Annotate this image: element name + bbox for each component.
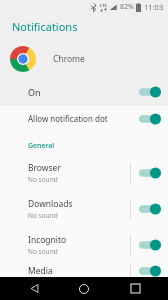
staticText: 11:03	[144, 2, 164, 12]
staticText: Media	[28, 265, 53, 277]
button[interactable]: Chrome	[0, 42, 168, 76]
button[interactable]: Toggle Incognito	[131, 229, 168, 261]
button[interactable]: Toggle notifications	[131, 80, 168, 104]
staticText: Notifications	[12, 19, 78, 34]
button[interactable]: Toggle notification dot	[131, 106, 168, 131]
staticText: LTE	[100, 3, 107, 8]
button[interactable]: Allow notification dot	[0, 106, 168, 131]
staticText: General	[28, 141, 55, 151]
button[interactable]: Media	[0, 265, 168, 277]
button[interactable]: Browser	[0, 157, 168, 189]
button[interactable]: Downloads	[0, 193, 168, 225]
staticText: Downloads	[28, 198, 73, 210]
button[interactable]: Incognito	[0, 229, 168, 261]
button[interactable]: Back	[17, 277, 51, 300]
staticText: Incognito	[28, 234, 67, 246]
staticText: No sound	[28, 211, 58, 220]
button[interactable]: Toggle Downloads	[131, 193, 168, 225]
button[interactable]: Home	[67, 277, 101, 300]
staticText: Allow notification dot	[28, 113, 131, 124]
staticText: Chrome	[53, 53, 85, 65]
button[interactable]: Toggle Browser	[131, 157, 168, 189]
staticText: Browser	[28, 162, 61, 174]
staticText: On	[28, 86, 131, 98]
staticText: No sound	[28, 247, 58, 256]
staticText: No sound	[28, 175, 58, 184]
button[interactable]: Toggle Media	[131, 265, 168, 277]
button[interactable]: Recent apps	[118, 277, 152, 300]
staticText: 82%	[120, 2, 134, 12]
button[interactable]: On	[0, 80, 168, 104]
